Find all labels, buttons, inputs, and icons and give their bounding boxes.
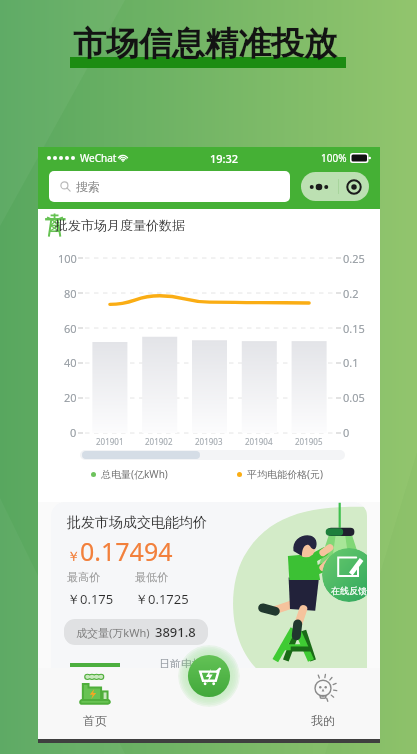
- staticText: 100%: [321, 151, 347, 165]
- staticText: 80: [64, 286, 77, 301]
- button[interactable]: Mini program menu: [301, 172, 369, 201]
- staticText: 0.25: [343, 251, 365, 266]
- staticText: 0.17494: [80, 534, 173, 568]
- button[interactable]: 在线反馈: [51, 502, 367, 668]
- staticText: 40: [64, 355, 77, 370]
- staticText: 201904: [245, 436, 273, 447]
- button[interactable]: 我的: [266, 668, 380, 739]
- button[interactable]: 在线反馈: [322, 548, 367, 602]
- button[interactable]: Buy electricity: [178, 645, 240, 707]
- staticText: 批发市场月度量价数据: [55, 217, 185, 233]
- staticText: 0.2: [343, 286, 359, 301]
- staticText: 0.05: [343, 390, 365, 405]
- staticText: 我的: [311, 713, 335, 728]
- staticText: ￥: [67, 548, 80, 564]
- staticText: 在线反馈: [331, 585, 367, 596]
- staticText: 201905: [295, 436, 323, 447]
- button[interactable]: 搜索: [49, 171, 290, 202]
- staticText: 最高价: [67, 570, 100, 584]
- staticText: 总电量(亿kWh): [101, 467, 168, 481]
- staticText: 批发市场成交电能均价: [67, 514, 207, 532]
- staticText: 最低价: [135, 570, 168, 584]
- staticText: 100: [58, 251, 77, 266]
- staticText: 0.15: [343, 321, 365, 336]
- staticText: 20: [64, 390, 77, 405]
- staticText: ￥0.175: [67, 590, 114, 608]
- staticText: 201901: [96, 436, 124, 447]
- staticText: 市场信息精准投放: [73, 23, 337, 65]
- staticText: 平均电能价格(元): [247, 467, 323, 481]
- staticText: 日前申报: [159, 657, 203, 668]
- staticText: 19:32: [210, 151, 239, 166]
- staticText: 60: [64, 321, 77, 336]
- staticText: WeChat: [80, 151, 117, 165]
- staticText: 成交量(万kWh): [76, 625, 150, 640]
- staticText: ￥0.1725: [135, 590, 189, 608]
- staticText: 0: [343, 425, 350, 440]
- staticText: 0: [70, 425, 77, 440]
- staticText: 201903: [195, 436, 223, 447]
- staticText: 搜索: [76, 179, 100, 194]
- staticText: 3891.8: [155, 623, 196, 641]
- staticText: 201902: [145, 436, 173, 447]
- staticText: 首页: [83, 713, 107, 728]
- button[interactable]: 首页: [38, 668, 152, 739]
- staticText: 0.1: [343, 355, 359, 370]
